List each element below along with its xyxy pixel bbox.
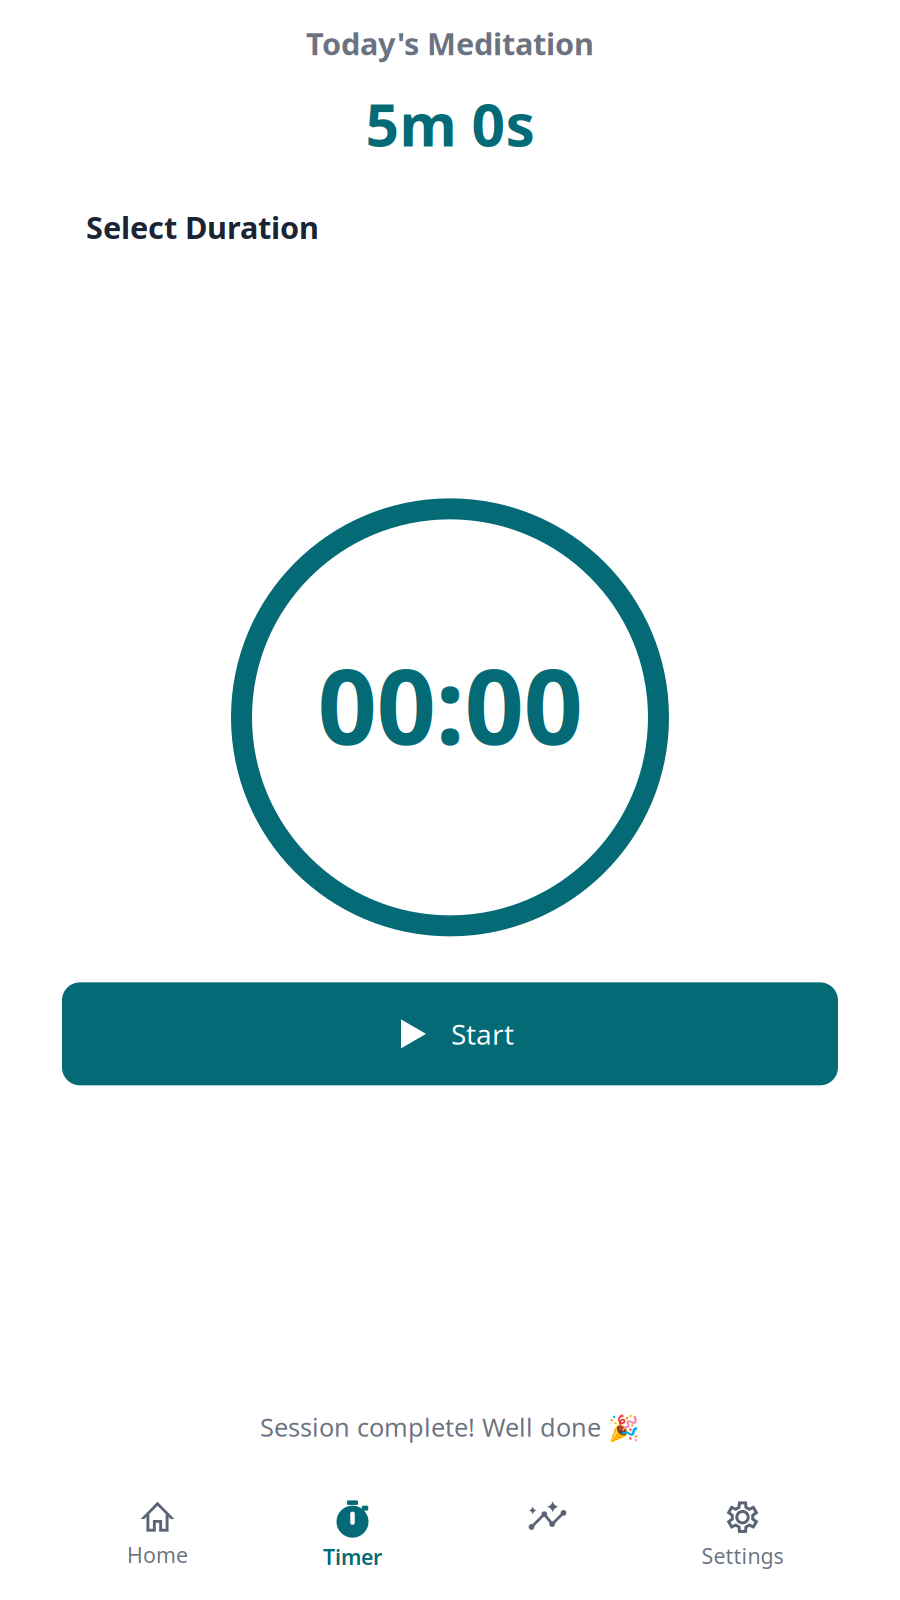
staticText: Settings [701, 1542, 783, 1570]
staticText: Timer [323, 1543, 382, 1571]
button[interactable]: Start [62, 982, 838, 1085]
staticText: Session complete! Well done 🎉 [260, 1410, 640, 1444]
staticText: Select Duration [86, 207, 319, 247]
staticText: 00:00 [317, 635, 582, 773]
button[interactable]: Settings [645, 1501, 840, 1570]
button[interactable]: Home [60, 1502, 255, 1569]
staticText: Today's Meditation [306, 23, 594, 64]
staticText: 5m 0s [365, 85, 534, 163]
button[interactable]: Timer [255, 1500, 450, 1571]
staticText: Home [127, 1541, 188, 1569]
staticText: Start [451, 1015, 514, 1052]
button[interactable]: Insights [450, 1502, 645, 1569]
